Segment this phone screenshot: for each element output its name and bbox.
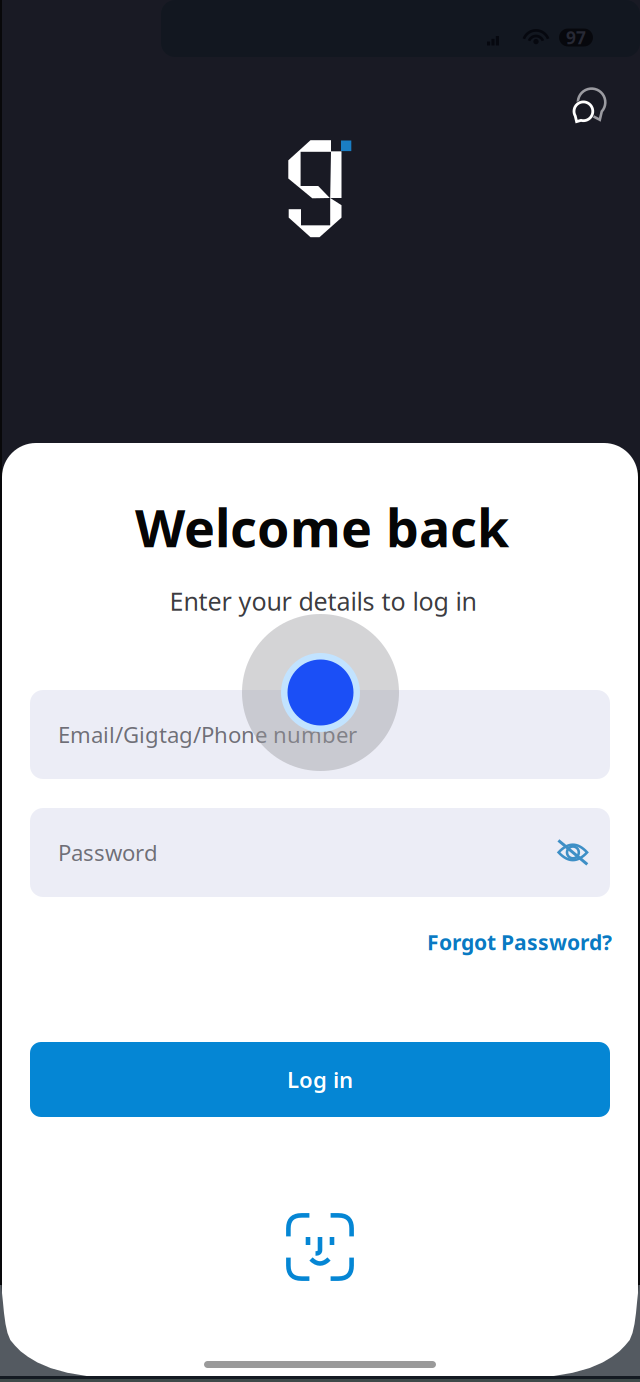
staticText: Welcome back	[135, 492, 509, 562]
staticText: 97	[566, 26, 586, 49]
button[interactable]: Forgot Password?	[30, 929, 612, 955]
staticText: Email/Gigtag/Phone number	[58, 719, 357, 749]
button[interactable]: Show password	[557, 839, 589, 866]
staticText: Forgot Password?	[427, 928, 612, 956]
button[interactable]: Log in	[30, 1042, 610, 1117]
staticText: Password	[58, 837, 158, 867]
button[interactable]: Support chat	[566, 81, 614, 131]
button[interactable]: Sign in with Face ID	[286, 1213, 354, 1281]
staticText: Log in	[287, 1064, 353, 1094]
staticText: Enter your details to log in	[169, 584, 476, 618]
